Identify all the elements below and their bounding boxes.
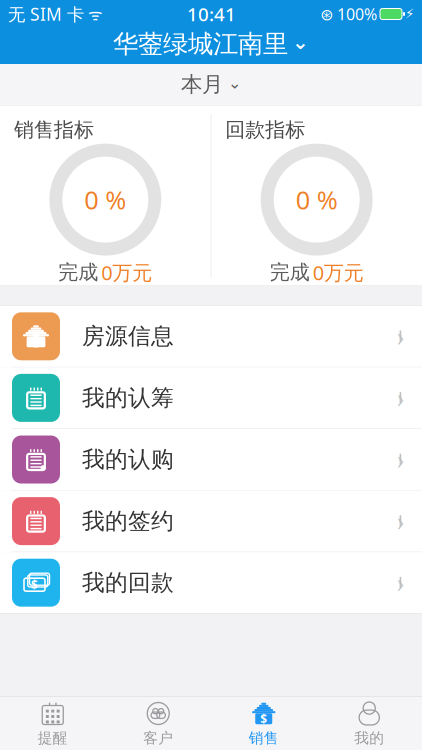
button[interactable]: 房源信息 — [0, 306, 422, 367]
staticText: 销售指标 — [14, 117, 94, 142]
staticText: 我的回款 — [82, 569, 174, 597]
staticText: ᯤ — [84, 3, 103, 25]
staticText: 客户 — [143, 729, 173, 747]
staticText: 房源信息 — [82, 322, 174, 350]
staticText: 我的认筹 — [82, 384, 174, 412]
staticText: ⊛ 100% — [320, 3, 377, 25]
button[interactable]: $ — [211, 696, 316, 750]
staticText: 我的认购 — [82, 446, 174, 473]
button[interactable]: 客户 — [105, 696, 211, 750]
staticText: 完成 — [270, 260, 310, 285]
staticText: › — [397, 565, 404, 600]
staticText: 完成 — [58, 260, 98, 285]
staticText: 0万元 — [313, 259, 364, 286]
staticText: › — [397, 442, 404, 477]
staticText: 10:41 — [187, 2, 236, 26]
staticText: › — [397, 503, 404, 539]
staticText: › — [397, 380, 404, 416]
button[interactable]: 我的认筹 — [0, 367, 422, 429]
staticText: $ — [260, 711, 267, 727]
staticText: 0万元 — [101, 259, 152, 286]
staticText: 本月 — [181, 71, 223, 98]
staticText: ⚡︎ — [405, 6, 414, 21]
staticText: 0 % — [296, 183, 338, 216]
staticText: $ — [31, 577, 38, 593]
staticText: ⌄ — [292, 31, 309, 53]
staticText: 提醒 — [38, 729, 68, 747]
button[interactable]: 我的签约 — [0, 491, 422, 552]
staticText: 0 % — [84, 183, 126, 216]
staticText: › — [397, 319, 404, 354]
button[interactable]: 提醒 — [0, 696, 105, 750]
button[interactable]: 我的认购 — [0, 429, 422, 491]
staticText: 回款指标 — [225, 117, 305, 142]
button[interactable]: $ — [0, 552, 422, 613]
staticText: 我的签约 — [82, 507, 174, 535]
button[interactable]: 我的 — [316, 696, 422, 750]
staticText: 华蓥绿城江南里 — [113, 28, 288, 59]
button[interactable]: 华蓥绿城江南里 — [0, 24, 422, 64]
staticText: 无 SIM 卡 — [8, 2, 84, 25]
button[interactable]: 本月 — [0, 64, 422, 105]
staticText: 我的 — [354, 729, 384, 747]
staticText: ⌄ — [228, 74, 241, 92]
staticText: 销售 — [249, 729, 279, 747]
